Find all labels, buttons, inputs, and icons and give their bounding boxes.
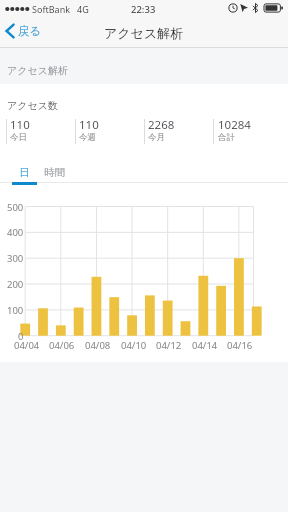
staticText: アクセス解析 xyxy=(7,64,68,77)
staticText: アクセス解析 xyxy=(104,25,184,41)
staticText: 合計 xyxy=(218,132,235,143)
staticText: 日 xyxy=(19,166,30,179)
staticText: 04/14 xyxy=(192,339,218,352)
staticText: 0 xyxy=(18,330,24,342)
staticText: 04/06 xyxy=(49,339,75,352)
staticText: 110 xyxy=(79,117,99,133)
staticText: 04/16 xyxy=(227,339,253,352)
staticText: 04/10 xyxy=(121,339,147,352)
staticText: 04/08 xyxy=(85,339,111,352)
staticText: 04/04 xyxy=(14,339,40,352)
staticText: 2268 xyxy=(148,117,175,133)
staticText: 400 xyxy=(7,226,24,238)
staticText: 時間 xyxy=(44,166,65,179)
staticText: 200 xyxy=(7,278,24,290)
staticText: 22:33 xyxy=(131,3,156,16)
staticText: 10284 xyxy=(218,117,251,133)
staticText: 300 xyxy=(7,252,24,264)
staticText: SoftBank xyxy=(32,3,70,15)
staticText: 戻る xyxy=(18,24,42,38)
staticText: 今月 xyxy=(148,132,165,143)
button[interactable]: 時間 xyxy=(42,160,66,184)
staticText: 500 xyxy=(7,201,24,213)
button[interactable]: 戻る xyxy=(3,22,44,40)
button[interactable]: 日 xyxy=(12,160,37,184)
staticText: 今週 xyxy=(79,132,96,143)
staticText: 110 xyxy=(10,117,30,133)
staticText: 100 xyxy=(7,304,24,316)
staticText: 4G xyxy=(77,3,89,15)
staticText: 今日 xyxy=(10,132,27,143)
staticText: 04/12 xyxy=(156,339,182,352)
staticText: アクセス数 xyxy=(7,99,58,112)
